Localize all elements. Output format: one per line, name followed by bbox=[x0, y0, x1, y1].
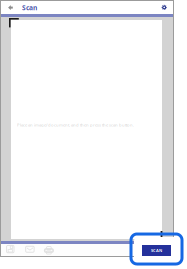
staticText: Scan bbox=[22, 3, 37, 11]
staticText: Place an image/document, and then press … bbox=[17, 122, 134, 128]
button[interactable]: Print bbox=[43, 244, 54, 255]
button[interactable]: Back bbox=[6, 1, 16, 14]
button[interactable]: SCAN bbox=[142, 245, 171, 256]
button[interactable]: Save bbox=[5, 244, 16, 255]
button[interactable]: Email bbox=[24, 244, 35, 255]
staticText: SCAN bbox=[151, 248, 162, 253]
button[interactable]: Settings bbox=[158, 1, 170, 14]
